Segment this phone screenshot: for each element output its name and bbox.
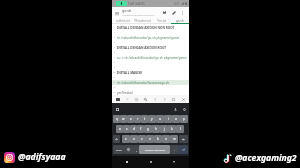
button[interactable]: d (130, 125, 137, 133)
button[interactable]: Voice input (172, 106, 178, 112)
staticText: k (171, 127, 173, 131)
staticText: *Readme.txt (134, 19, 152, 23)
button[interactable]: . (170, 145, 178, 154)
button[interactable]: Emoji (124, 145, 133, 154)
button[interactable]: Clipboard (114, 106, 120, 112)
button[interactable]: n (162, 135, 170, 143)
button[interactable]: Recents (170, 158, 178, 166)
staticText: 13 (113, 86, 116, 89)
staticText: a (119, 127, 121, 131)
button[interactable]: q (113, 115, 120, 123)
staticText: l (180, 127, 181, 131)
button[interactable]: TikTok @acexgaming2 (223, 152, 297, 164)
staticText: d (133, 127, 135, 131)
staticText: x (133, 137, 135, 141)
button[interactable]: Keyboard settings (181, 106, 187, 112)
button[interactable]: Previous match (151, 95, 159, 103)
staticText: 12 (113, 81, 116, 84)
button[interactable]: Shift (113, 135, 120, 143)
button[interactable]: o (172, 115, 180, 123)
button[interactable]: u (156, 115, 164, 123)
button[interactable]: m (170, 135, 178, 143)
button[interactable]: k (168, 125, 176, 133)
button[interactable]: Back (123, 158, 131, 166)
staticText: y (151, 117, 153, 121)
button[interactable]: Bahasa Indonesia (139, 145, 170, 154)
button[interactable]: Enter (178, 145, 188, 154)
button[interactable]: Save file (161, 9, 168, 16)
button[interactable]: p (180, 115, 188, 123)
staticText: yes?hesta4 (117, 91, 133, 95)
button[interactable]: x (130, 135, 138, 143)
staticText: sh /sdcard/dhxxxxbx/hxxxxnxxgo.sh (117, 81, 170, 85)
button[interactable]: a (116, 125, 123, 133)
button[interactable]: Instagram @adifsyaaa (4, 151, 66, 163)
staticText: ?123 (116, 148, 122, 151)
button[interactable]: t (141, 115, 148, 123)
staticText: 4 (114, 41, 116, 44)
button[interactable]: Close (179, 95, 187, 103)
staticText: b (157, 137, 159, 141)
button[interactable]: b (154, 135, 162, 143)
staticText: Bahasa Indonesia (145, 148, 165, 151)
staticText: PLAY GAMES (128, 2, 145, 6)
button[interactable]: ?123 (113, 145, 124, 154)
staticText: *ini.txt (157, 19, 167, 23)
button[interactable]: , (133, 145, 139, 154)
button[interactable]: j (160, 125, 168, 133)
button[interactable]: e (127, 115, 134, 123)
staticText: 9 (114, 66, 116, 69)
staticText: 14 (113, 91, 116, 94)
button[interactable]: *Readme.txt (133, 18, 153, 23)
staticText: 5 (114, 46, 116, 49)
staticText: h (155, 127, 157, 131)
button[interactable]: Replace (169, 95, 177, 103)
staticText: 1 (114, 26, 116, 29)
button[interactable]: i (164, 115, 172, 123)
staticText: go.sh (176, 19, 184, 23)
button[interactable]: f (137, 125, 144, 133)
button[interactable]: y (148, 115, 156, 123)
button[interactable]: Open navigation drawer (113, 9, 121, 17)
button[interactable]: Search (141, 95, 149, 103)
staticText: INSTALL DENGAN AXIOON ROOT (117, 46, 167, 50)
staticText: p (183, 117, 185, 121)
button[interactable]: z (122, 135, 130, 143)
staticText: 7 (114, 56, 116, 59)
button[interactable]: c (138, 135, 146, 143)
staticText: v (149, 137, 151, 141)
staticText: , (136, 148, 137, 152)
button[interactable]: *ini.txt (153, 18, 171, 23)
button[interactable]: Edit (170, 9, 177, 16)
staticText: g (147, 127, 149, 131)
staticText: @acexgaming2 (235, 152, 297, 164)
button[interactable]: h (152, 125, 160, 133)
staticText: z (125, 137, 127, 141)
staticText: e (130, 117, 132, 121)
button[interactable]: l (176, 125, 184, 133)
staticText: n (165, 137, 167, 141)
button[interactable]: More options (179, 10, 185, 16)
button[interactable]: g (144, 125, 152, 133)
staticText: INSTALL DENGAN AXIOON NON ROOT (117, 26, 175, 30)
staticText: 6 (114, 51, 116, 54)
button[interactable]: Toggle keyboard (114, 96, 121, 103)
button[interactable]: Backspace (179, 135, 188, 143)
button[interactable]: r (134, 115, 141, 123)
staticText: INSTALL MAGISK (117, 71, 143, 75)
staticText: su -c sh /sdcard/dhxxxxbx/go.sh pkgname/… (117, 56, 187, 60)
button[interactable]: v (146, 135, 154, 143)
button[interactable]: Home (147, 158, 155, 166)
button[interactable]: Copy (132, 95, 140, 103)
button[interactable]: outline.txt (112, 18, 133, 23)
staticText: sh /sdcard/dhxxxxbx/go.sh pkgname/game (117, 36, 180, 40)
button[interactable]: w (120, 115, 127, 123)
button[interactable]: Cut (123, 95, 131, 103)
staticText: @adifsyaaa (18, 151, 66, 163)
button[interactable]: go.sh (171, 18, 189, 23)
staticText: o (175, 117, 177, 121)
button[interactable]: Next match (160, 95, 168, 103)
button[interactable]: s (123, 125, 130, 133)
staticText: 5:41 (174, 2, 180, 6)
staticText: i (168, 117, 169, 121)
